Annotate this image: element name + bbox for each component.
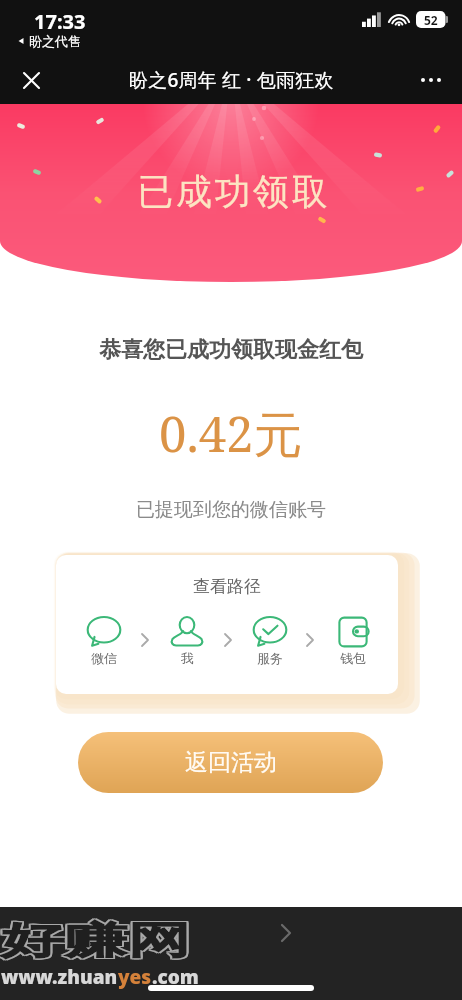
- button[interactable]: 服务: [244, 617, 296, 666]
- button[interactable]: More options: [409, 58, 453, 102]
- button[interactable]: 我: [161, 617, 213, 666]
- staticText: 恭喜您已成功领取现金红包: [99, 336, 363, 364]
- staticText: 好赚网: [3, 916, 192, 963]
- button[interactable]: 返回活动: [78, 732, 383, 793]
- staticText: 0.42元: [159, 400, 303, 467]
- staticText: 好赚网: [1, 918, 191, 965]
- staticText: 52: [424, 12, 438, 28]
- staticText: 已成功领取: [136, 169, 329, 214]
- staticText: 服务: [257, 650, 283, 666]
- staticText: 查看路径: [193, 576, 261, 597]
- staticText: 17:33: [34, 8, 86, 35]
- button[interactable]: 钱包: [327, 617, 379, 666]
- staticText: 好赚网: [1, 917, 191, 964]
- staticText: yes: [118, 964, 152, 990]
- button[interactable]: Close: [9, 58, 53, 102]
- staticText: 盼之6周年 红 · 包雨狂欢: [129, 67, 334, 93]
- staticText: 好赚网: [0, 916, 189, 963]
- staticText: .com: [152, 964, 199, 990]
- staticText: 好赚网: [0, 918, 189, 965]
- button[interactable]: 查看路径: [56, 555, 398, 694]
- staticText: 已提现到您的微信账号: [136, 498, 326, 522]
- staticText: 盼之代售: [29, 33, 81, 49]
- staticText: www.zhuan: [1, 964, 118, 990]
- staticText: 好赚网: [3, 918, 192, 965]
- staticText: 好赚网: [0, 917, 189, 964]
- staticText: 返回活动: [185, 748, 277, 777]
- button[interactable]: 微信: [78, 617, 130, 666]
- staticText: 好赚网: [1, 916, 191, 963]
- staticText: 钱包: [340, 650, 366, 666]
- staticText: 好赚网: [3, 917, 192, 964]
- staticText: 微信: [91, 650, 117, 666]
- staticText: 我: [181, 650, 194, 666]
